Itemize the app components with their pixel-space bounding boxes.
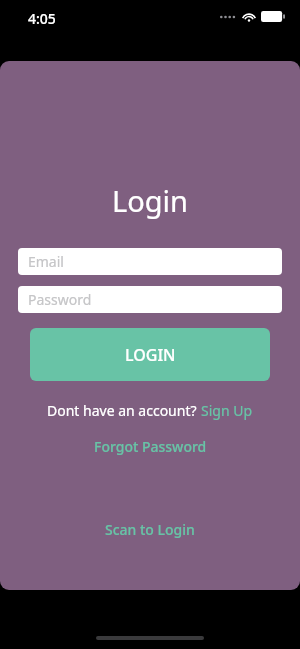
staticText: 4:05: [28, 9, 56, 28]
button[interactable]: Sign Up: [201, 401, 253, 420]
staticText: Dont have an account?: [47, 401, 201, 420]
staticText: LOGIN: [125, 344, 176, 366]
staticText: Email: [28, 252, 64, 271]
staticText: Login: [112, 181, 188, 220]
staticText: Scan to Login: [105, 520, 195, 539]
staticText: Sign Up: [201, 401, 253, 420]
button[interactable]: Email: [18, 248, 282, 275]
button[interactable]: LOGIN: [30, 328, 270, 381]
button[interactable]: Forgot Password: [94, 437, 207, 456]
staticText: Forgot Password: [94, 437, 207, 456]
button[interactable]: Password: [18, 286, 282, 313]
other: Home indicator: [96, 636, 204, 640]
button[interactable]: Scan to Login: [105, 520, 195, 539]
staticText: Password: [28, 290, 92, 309]
